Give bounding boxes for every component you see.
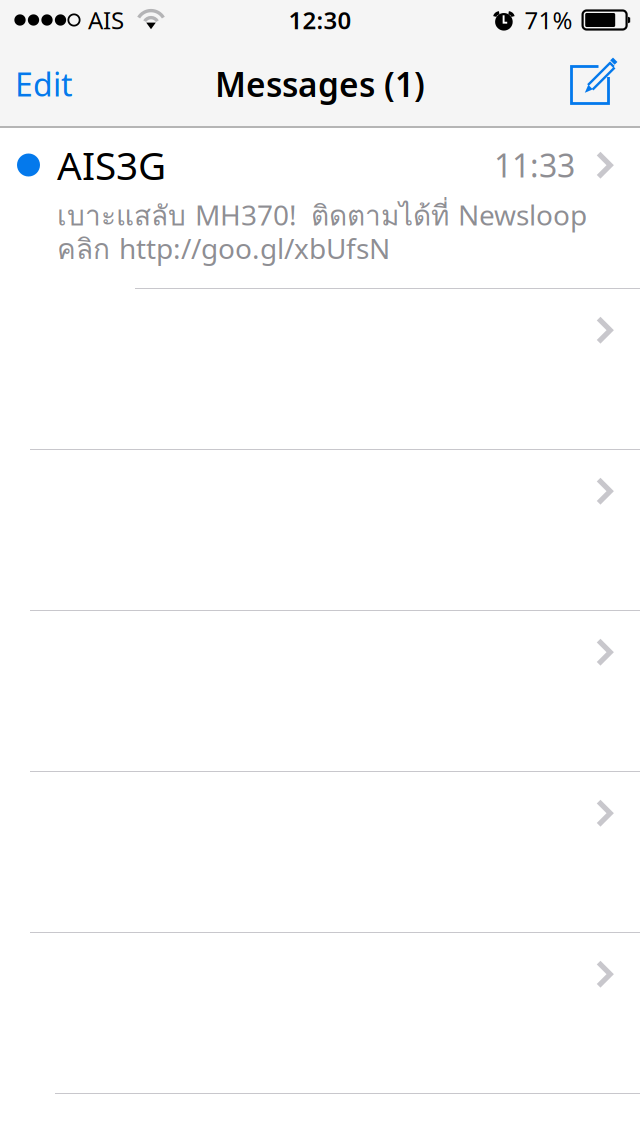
button[interactable]: Compose: [544, 40, 640, 127]
button[interactable]: Edit: [0, 41, 102, 127]
staticText: Messages (1): [215, 62, 425, 106]
staticText: AIS3G: [57, 139, 166, 191]
staticText: Edit: [15, 63, 73, 105]
staticText: AIS: [88, 4, 124, 36]
staticText: 12:30: [288, 4, 351, 36]
staticText: 71%: [525, 4, 573, 36]
staticText: เบาะแสลับ MH370! ติดตามได้ที่ Newsloop ค…: [57, 194, 587, 271]
staticText: 11:33: [494, 144, 575, 186]
button[interactable]: AIS3G: [0, 128, 640, 288]
